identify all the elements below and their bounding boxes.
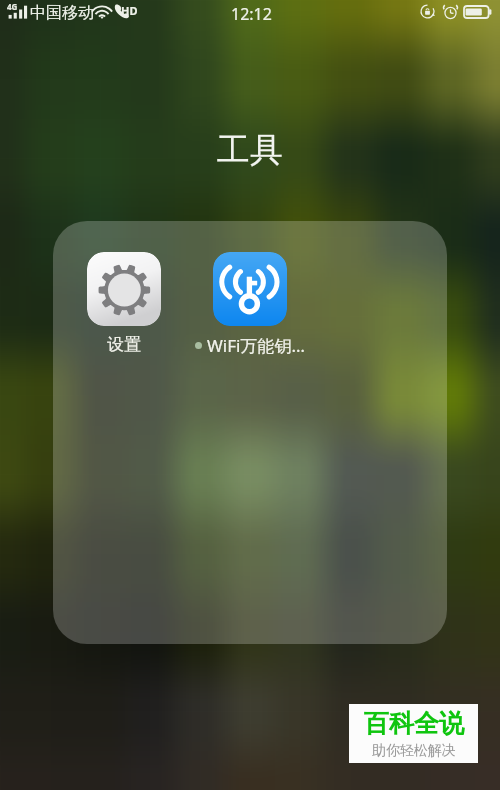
staticText: 百科全说 [364, 708, 464, 739]
staticText: 中国移动 [30, 3, 94, 23]
staticText: 工具 [217, 129, 283, 171]
staticText: WiFi万能钥… [207, 334, 305, 357]
button[interactable] [213, 252, 287, 326]
staticText: HD [121, 3, 138, 18]
staticText: 4G [7, 1, 18, 12]
staticText: 助你轻松解决 [372, 742, 456, 760]
staticText: 12:12 [231, 3, 272, 25]
button[interactable] [87, 252, 161, 326]
staticText: 设置 [107, 334, 141, 355]
button[interactable] [53, 221, 447, 644]
